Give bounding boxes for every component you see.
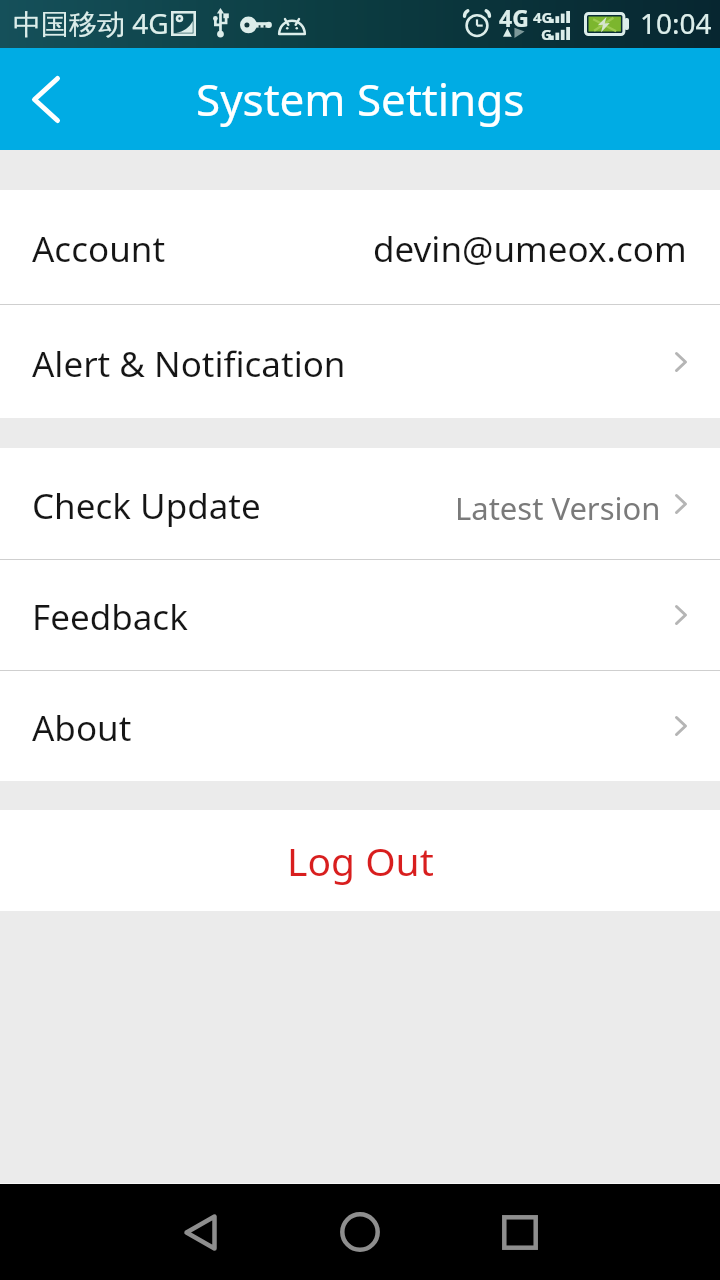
- button[interactable]: Feedback: [0, 560, 720, 670]
- staticText: G: [541, 24, 552, 44]
- staticText: Feedback: [32, 593, 188, 641]
- staticText: Check Update: [32, 482, 261, 530]
- button[interactable]: Log Out: [0, 810, 720, 911]
- staticText: devin@umeox.com: [373, 225, 687, 273]
- staticText: 10:04: [640, 4, 712, 42]
- staticText: Log Out: [287, 834, 434, 887]
- button[interactable]: Back: [152, 1184, 248, 1280]
- staticText: 4G: [499, 2, 529, 33]
- staticText: Alert & Notification: [32, 340, 346, 388]
- staticText: 中国移动 4G: [13, 4, 169, 42]
- staticText: System Settings: [196, 69, 525, 129]
- staticText: Account: [32, 225, 166, 273]
- staticText: About: [32, 704, 132, 752]
- button[interactable]: Back: [0, 48, 92, 150]
- staticText: 4G: [533, 7, 553, 27]
- button[interactable]: Recents: [472, 1184, 568, 1280]
- staticText: Latest Version: [455, 487, 661, 529]
- button[interactable]: Check Update: [0, 448, 720, 559]
- button[interactable]: Account: [0, 190, 720, 304]
- button[interactable]: Alert & Notification: [0, 305, 720, 418]
- button[interactable]: About: [0, 671, 720, 781]
- button[interactable]: Home: [312, 1184, 408, 1280]
